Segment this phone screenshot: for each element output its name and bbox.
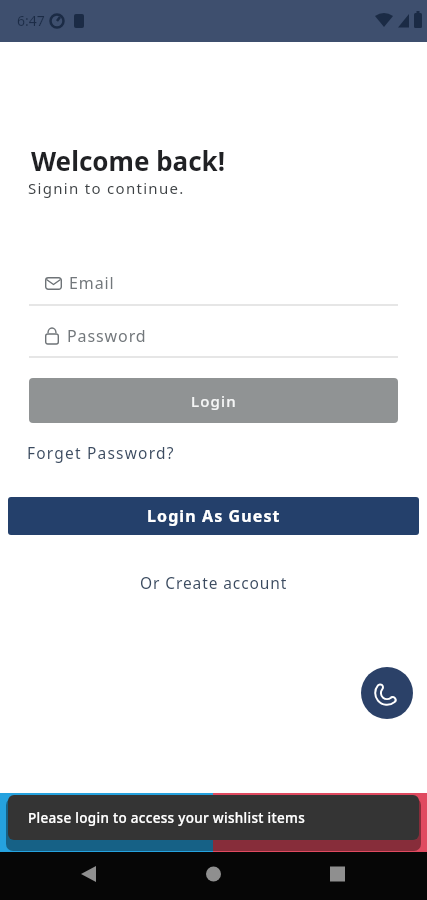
- button[interactable]: [361, 667, 413, 719]
- button[interactable]: Password: [29, 325, 398, 347]
- button[interactable]: [143, 852, 285, 900]
- staticText: Login: [191, 391, 237, 411]
- staticText: Signin to continue.: [28, 178, 185, 198]
- button[interactable]: Forget Password?: [27, 442, 175, 463]
- button[interactable]: [0, 793, 213, 852]
- staticText: Password: [67, 325, 147, 347]
- button[interactable]: Login: [29, 378, 398, 423]
- staticText: 6:47: [17, 11, 45, 30]
- button[interactable]: [0, 852, 143, 900]
- button[interactable]: Email: [29, 272, 398, 294]
- staticText: Welcome back!: [31, 143, 226, 178]
- button[interactable]: Login As Guest: [8, 497, 419, 535]
- button[interactable]: [213, 793, 427, 852]
- staticText: Email: [69, 272, 115, 294]
- button[interactable]: [285, 852, 427, 900]
- staticText: Please login to access your wishlist ite…: [28, 809, 306, 827]
- staticText: Login As Guest: [147, 505, 281, 527]
- button[interactable]: Or Create account: [140, 572, 288, 593]
